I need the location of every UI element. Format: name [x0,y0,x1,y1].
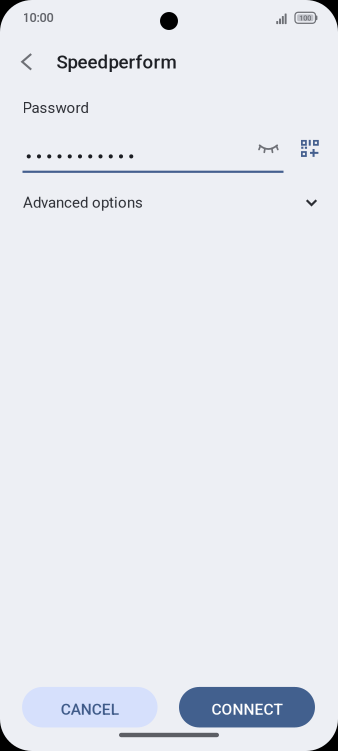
button[interactable]: CONNECT [179,687,315,727]
staticText: Advanced options [23,194,143,211]
staticText: Speedperform [56,51,176,73]
staticText: CANCEL [61,700,119,718]
staticText: CONNECT [211,700,282,718]
staticText: 100 [299,13,311,22]
button[interactable]: Scan QR code [294,132,326,164]
button[interactable]: Advanced options [0,184,338,222]
staticText: 10:00 [22,10,53,25]
staticText: Password [22,99,88,117]
button[interactable]: Back [7,40,47,84]
button[interactable]: CANCEL [22,687,157,727]
button[interactable]: Show password [250,130,286,166]
